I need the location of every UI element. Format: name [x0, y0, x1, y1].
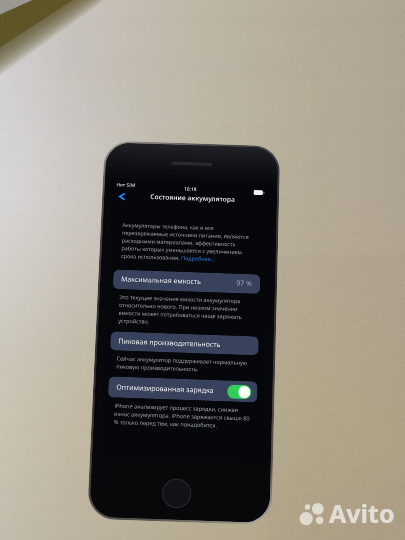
button[interactable]: Оптимизированная зарядка: [108, 376, 258, 402]
staticText: Максимальная емкость: [121, 274, 202, 287]
staticText: Avito: [329, 496, 395, 530]
staticText: Пиковая производительность: [118, 337, 221, 350]
staticText: Оптимизированная зарядка: [116, 382, 214, 396]
button[interactable]: Максимальная емкость: [113, 269, 260, 294]
staticText: 10:18: [184, 186, 197, 193]
staticText: iPhone анализирует процесс зарядки, сниж…: [114, 402, 250, 431]
button[interactable]: Назад: [114, 189, 130, 204]
staticText: Нет SIM: [116, 182, 136, 189]
button[interactable]: Home: [161, 478, 192, 509]
button[interactable]: Оптимизированная зарядка: [227, 384, 251, 399]
staticText: 97 %: [236, 278, 252, 289]
button[interactable]: Пиковая производительность: [110, 331, 259, 355]
staticText: Это текущее значение емкости аккумулятор…: [118, 293, 253, 329]
staticText: Состояние аккумулятора: [150, 192, 236, 204]
staticText: Сейчас аккумулятор поддерживает нормальн…: [116, 354, 251, 375]
staticText: Аккумуляторы телефона, как и все перезар…: [121, 221, 255, 264]
